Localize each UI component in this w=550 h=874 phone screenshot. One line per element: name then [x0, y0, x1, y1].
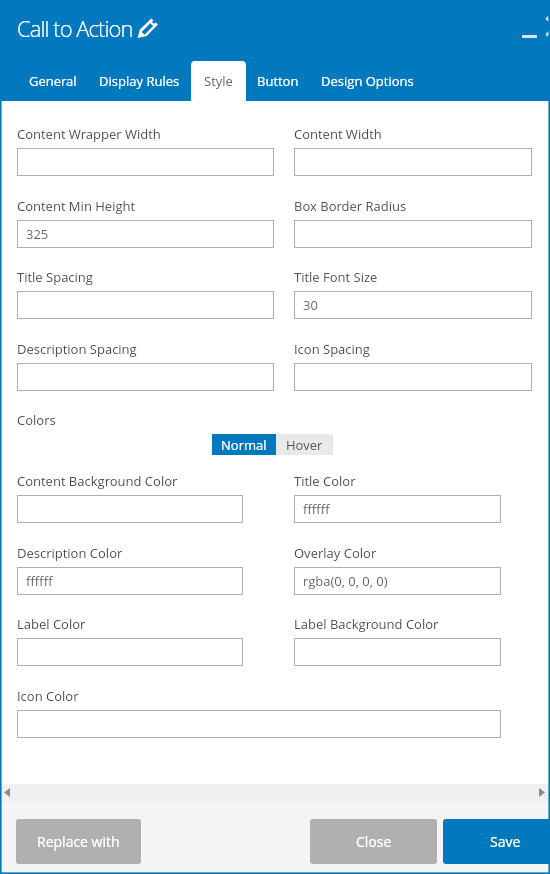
staticText: Label Background Color: [294, 615, 439, 633]
staticText: rgba(0, 0, 0, 0): [303, 572, 388, 590]
button[interactable]: [17, 710, 501, 738]
button[interactable]: 325: [17, 220, 274, 248]
staticText: Title Spacing: [17, 268, 93, 286]
staticText: Colors: [17, 411, 56, 429]
button[interactable]: Design Options: [310, 61, 425, 101]
button[interactable]: Scroll right: [539, 788, 545, 797]
staticText: Content Wrapper Width: [17, 125, 161, 143]
button[interactable]: [294, 638, 501, 666]
button[interactable]: Call to Action: [17, 13, 133, 43]
button[interactable]: [294, 363, 532, 391]
button[interactable]: Button: [246, 61, 310, 101]
button[interactable]: Hover: [276, 434, 333, 455]
button[interactable]: Minimize: [514, 22, 544, 48]
staticText: Title Font Size: [294, 268, 378, 286]
staticText: Description Spacing: [17, 340, 137, 358]
staticText: Content Background Color: [17, 472, 178, 490]
staticText: General: [29, 72, 77, 90]
button[interactable]: Normal: [212, 434, 276, 455]
button[interactable]: Save: [443, 819, 550, 864]
staticText: Icon Color: [17, 687, 79, 705]
staticText: Replace with: [37, 832, 120, 851]
button[interactable]: Close: [310, 819, 437, 864]
staticText: Hover: [286, 436, 323, 454]
staticText: ffffff: [26, 572, 53, 590]
button[interactable]: Replace with: [16, 819, 141, 864]
staticText: Style: [204, 72, 233, 90]
button[interactable]: [17, 291, 274, 319]
staticText: Content Min Height: [17, 197, 136, 215]
button[interactable]: ffffff: [294, 495, 501, 523]
staticText: Overlay Color: [294, 544, 377, 562]
button[interactable]: General: [18, 61, 88, 101]
button[interactable]: 30: [294, 291, 532, 319]
button[interactable]: Edit title: [137, 18, 158, 38]
staticText: Label Color: [17, 615, 86, 633]
staticText: Save: [490, 832, 521, 851]
staticText: Title Color: [294, 472, 356, 490]
staticText: Design Options: [321, 72, 414, 90]
button[interactable]: [294, 220, 532, 248]
staticText: 30: [303, 296, 318, 314]
staticText: Display Rules: [99, 72, 180, 90]
button[interactable]: Style: [191, 61, 246, 101]
staticText: 325: [26, 225, 49, 243]
button[interactable]: [17, 363, 274, 391]
staticText: Button: [257, 72, 299, 90]
button[interactable]: [294, 148, 532, 176]
staticText: Content Width: [294, 125, 382, 143]
staticText: Box Border Radius: [294, 197, 407, 215]
button[interactable]: [17, 148, 274, 176]
button[interactable]: rgba(0, 0, 0, 0): [294, 567, 501, 595]
staticText: Description Color: [17, 544, 123, 562]
staticText: Close: [356, 832, 392, 851]
button[interactable]: Close dialog: [540, 14, 550, 40]
button[interactable]: Display Rules: [88, 61, 191, 101]
staticText: ffffff: [303, 500, 330, 518]
staticText: Icon Spacing: [294, 340, 370, 358]
staticText: Call to Action: [17, 13, 133, 43]
staticText: Normal: [221, 436, 267, 454]
button[interactable]: [17, 495, 243, 523]
button[interactable]: [17, 638, 243, 666]
button[interactable]: ffffff: [17, 567, 243, 595]
button[interactable]: Scroll left: [4, 788, 10, 797]
